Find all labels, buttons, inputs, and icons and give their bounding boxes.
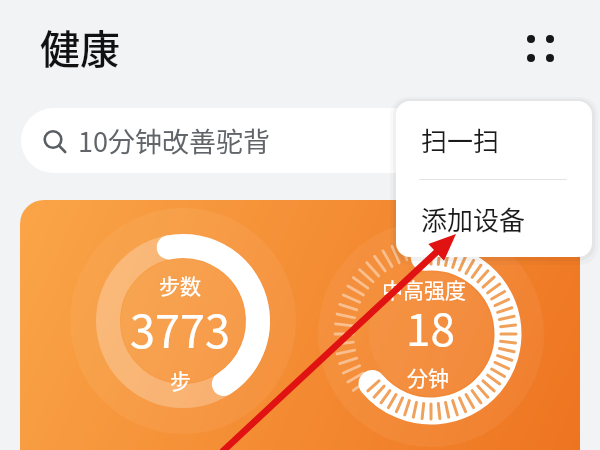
staticText: 扫一扫 [421,121,500,159]
button[interactable] [519,27,563,71]
button[interactable]: 扫一扫 [396,101,592,179]
button[interactable]: 10分钟改善驼背 [21,108,579,173]
staticText: 步数 [159,270,201,300]
staticText: 健康 [40,18,120,76]
staticText: 步 [170,365,191,395]
staticText: 10分钟改善驼背 [78,121,270,160]
staticText: 3773 [130,296,230,361]
staticText: 18 [406,295,455,359]
staticText: 中高强度 [382,274,466,304]
staticText: 分钟 [407,362,449,392]
staticText: 添加设备 [421,200,526,238]
button[interactable]: 添加设备 [396,180,592,257]
button[interactable]: 步数 [20,200,580,450]
